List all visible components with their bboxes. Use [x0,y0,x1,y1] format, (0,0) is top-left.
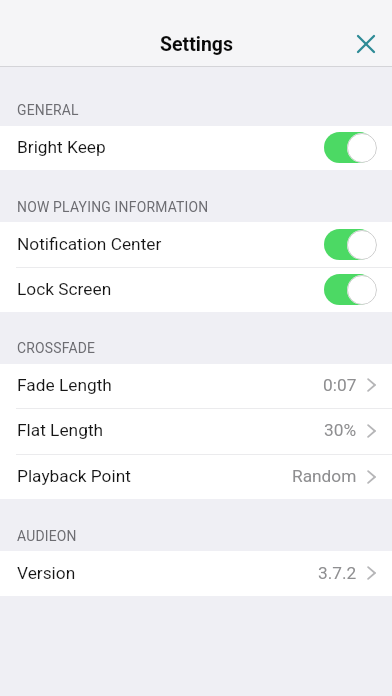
button[interactable]: Flat Length [0,408,392,454]
staticText: 30% [324,420,357,440]
button[interactable]: Playback Point [0,454,392,499]
staticText: AUDIEON [17,528,77,544]
staticText: Lock Screen [17,279,112,299]
staticText: Notification Center [17,234,162,254]
button[interactable]: Bright Keep [0,126,392,170]
staticText: 3.7.2 [318,563,357,583]
button[interactable]: Version [0,551,392,596]
staticText: Fade Length [17,375,112,395]
button[interactable]: Close [344,22,388,66]
button[interactable]: Lock Screen [0,267,392,313]
staticText: Bright Keep [17,137,106,157]
button[interactable]: Fade Length [0,364,392,408]
staticText: Playback Point [17,466,131,486]
staticText: 0:07 [323,375,357,395]
staticText: CROSSFADE [17,340,96,356]
staticText: Version [17,563,76,583]
staticText: Flat Length [17,420,104,440]
button[interactable]: Notification Center [0,222,392,267]
button[interactable]: On [324,132,377,163]
button[interactable]: On [324,274,377,305]
staticText: Settings [160,33,233,56]
staticText: NOW PLAYING INFORMATION [17,199,209,215]
button[interactable]: On [324,229,377,260]
staticText: Random [292,466,357,486]
staticText: GENERAL [17,102,79,118]
